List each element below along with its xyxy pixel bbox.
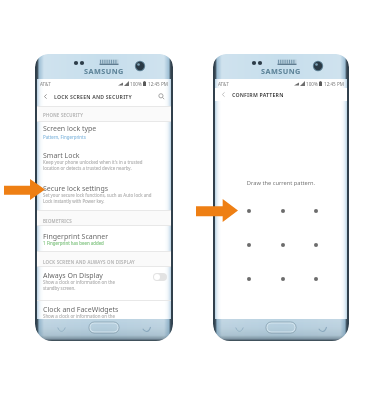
button[interactable] <box>314 277 318 281</box>
staticText: 1 Fingerprint has been added <box>43 240 104 246</box>
other: Recent apps <box>57 325 66 334</box>
button[interactable] <box>247 277 251 281</box>
staticText: AT&T <box>40 81 51 87</box>
staticText: 100% <box>306 81 318 87</box>
button[interactable] <box>314 243 318 247</box>
button[interactable] <box>37 120 171 144</box>
button[interactable]: Home <box>266 322 296 333</box>
staticText: LOCK SCREEN AND ALWAYS ON DISPLAY <box>43 259 135 265</box>
staticText: LOCK SCREEN AND SECURITY <box>54 93 132 100</box>
button[interactable] <box>314 209 318 213</box>
other: Next step arrow <box>4 179 45 200</box>
staticText: Show a clock or information on the stand… <box>43 279 115 291</box>
button[interactable] <box>37 147 171 169</box>
staticText: Fingerprint Scanner <box>43 232 109 242</box>
staticText: 100% <box>130 81 142 87</box>
staticText: SAMSUNG <box>84 66 124 76</box>
staticText: Secure lock settings <box>43 184 109 194</box>
button[interactable] <box>37 180 171 202</box>
button[interactable] <box>281 277 285 281</box>
staticText: AT&T <box>218 81 229 87</box>
button[interactable]: Home <box>89 322 119 333</box>
staticText: Clock and FaceWidgets <box>43 305 119 315</box>
staticText: Draw the current pattern. <box>215 179 347 187</box>
button[interactable]: Search <box>158 93 165 100</box>
button[interactable] <box>37 301 171 323</box>
button[interactable] <box>247 209 251 213</box>
other: Back <box>318 325 327 334</box>
button[interactable] <box>37 267 171 289</box>
staticText: Smart Lock <box>43 151 80 161</box>
staticText: Always On Display <box>43 271 103 281</box>
staticText: SAMSUNG <box>261 66 301 76</box>
button[interactable] <box>37 228 171 250</box>
staticText: Pattern, Fingerprints <box>43 134 86 140</box>
button[interactable] <box>281 209 285 213</box>
staticText: PHONE SECURITY <box>43 112 84 118</box>
button[interactable] <box>281 243 285 247</box>
staticText: Screen lock type <box>43 124 97 134</box>
other: Back <box>42 93 49 100</box>
button[interactable]: Back <box>215 88 347 101</box>
button[interactable]: Back <box>37 88 171 105</box>
staticText: BIOMETRICS <box>43 218 72 224</box>
staticText: Keep your phone unlocked when it's in a … <box>43 159 143 171</box>
staticText: Show a clock or information on the <box>43 313 115 319</box>
other: Back <box>220 91 227 98</box>
staticText: 12:45 PM <box>324 81 344 87</box>
button[interactable]: Always On Display toggle <box>153 273 167 281</box>
button[interactable] <box>247 243 251 247</box>
other: Back <box>142 325 151 334</box>
other: Next step arrow <box>196 199 238 222</box>
staticText: 12:45 PM <box>148 81 168 87</box>
staticText: CONFIRM PATTERN <box>232 91 284 98</box>
other: Recent apps <box>235 325 244 334</box>
staticText: Set your secure lock functions, such as … <box>43 192 152 204</box>
